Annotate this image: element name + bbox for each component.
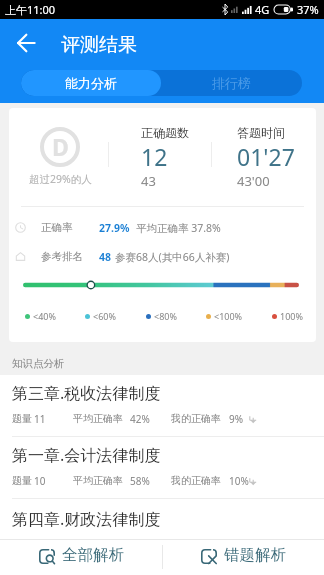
staticText: <60%: [93, 310, 116, 322]
staticText: 42%: [130, 412, 150, 425]
staticText: 12: [141, 141, 168, 172]
staticText: 排行榜: [212, 75, 251, 91]
staticText: 平均正确率: [73, 412, 123, 425]
staticText: 答题时间: [237, 125, 285, 140]
staticText: <80%: [154, 310, 177, 322]
staticText: 参考排名: [41, 250, 83, 263]
staticText: 27.9%: [99, 221, 130, 235]
staticText: 4G: [255, 2, 270, 17]
button[interactable]: 第三章.税收法律制度: [0, 375, 324, 437]
staticText: <100%: [214, 310, 243, 322]
staticText: 100%: [280, 310, 303, 322]
staticText: 11: [34, 412, 46, 425]
staticText: 第三章.税收法律制度: [12, 382, 161, 404]
staticText: 43'00: [237, 172, 270, 190]
staticText: 10%: [229, 474, 249, 487]
staticText: 48: [99, 250, 112, 264]
staticText: 平均正确率: [73, 474, 123, 487]
staticText: 37%: [297, 2, 319, 17]
staticText: 评测结果: [61, 33, 137, 57]
button[interactable]: 排行榜: [161, 70, 302, 96]
button[interactable]: 第四章.财政法律制度: [0, 499, 324, 539]
staticText: 全部解析: [62, 545, 124, 565]
staticText: 能力分析: [65, 75, 117, 91]
staticText: 正确率: [41, 221, 73, 234]
staticText: 正确题数: [141, 125, 189, 140]
staticText: 错题解析: [224, 545, 286, 565]
button[interactable]: 错题解析: [162, 539, 324, 575]
staticText: 题量: [12, 412, 32, 425]
staticText: 我的正确率: [171, 474, 221, 487]
staticText: <40%: [33, 310, 56, 322]
staticText: 58%: [130, 474, 150, 487]
button[interactable]: Back: [10, 25, 42, 57]
staticText: 超过29%的人: [29, 172, 92, 186]
staticText: 第一章.会计法律制度: [12, 444, 161, 466]
staticText: 我的正确率: [171, 412, 221, 425]
staticText: 01'27: [237, 141, 295, 172]
staticText: 题量: [12, 474, 32, 487]
staticText: 知识点分析: [12, 357, 65, 370]
button[interactable]: 能力分析: [21, 70, 161, 96]
staticText: 43: [141, 172, 156, 190]
staticText: 平均正确率 37.8%: [136, 221, 221, 235]
button[interactable]: 第一章.会计法律制度: [0, 437, 324, 499]
staticText: 9%: [229, 412, 244, 425]
button[interactable]: 全部解析: [0, 539, 162, 575]
staticText: 第四章.财政法律制度: [12, 508, 161, 530]
staticText: D: [52, 131, 69, 162]
staticText: 上午11:00: [5, 2, 56, 17]
staticText: 10: [34, 474, 46, 487]
staticText: 参赛68人(其中66人补赛): [115, 250, 230, 264]
